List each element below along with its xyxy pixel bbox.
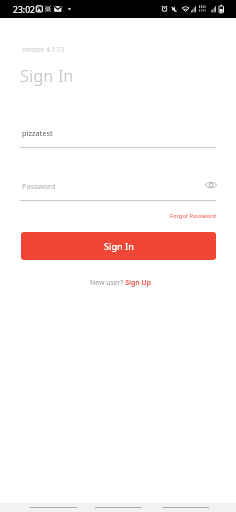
button[interactable]: Password: [20, 177, 216, 201]
button[interactable]: Sign In: [21, 232, 216, 260]
button[interactable]: pizzatest: [20, 124, 216, 148]
staticText: Sign In: [104, 240, 134, 252]
button[interactable]: Recent apps: [30, 503, 77, 512]
button[interactable]: Back: [162, 503, 209, 512]
button[interactable]: Forgot Password: [159, 210, 216, 222]
staticText: pizzatest: [22, 128, 53, 138]
staticText: 23:02: [13, 4, 35, 16]
button[interactable]: Home: [95, 503, 142, 512]
button[interactable]: Show password: [203, 177, 218, 192]
staticText: Sign In: [20, 65, 74, 87]
button[interactable]: New user? Sign Up: [2, 276, 236, 288]
staticText: Version 4.1.73: [22, 45, 65, 54]
staticText: New user? Sign Up: [90, 278, 151, 287]
staticText: Password: [22, 181, 56, 191]
staticText: Forgot Password: [170, 212, 216, 220]
